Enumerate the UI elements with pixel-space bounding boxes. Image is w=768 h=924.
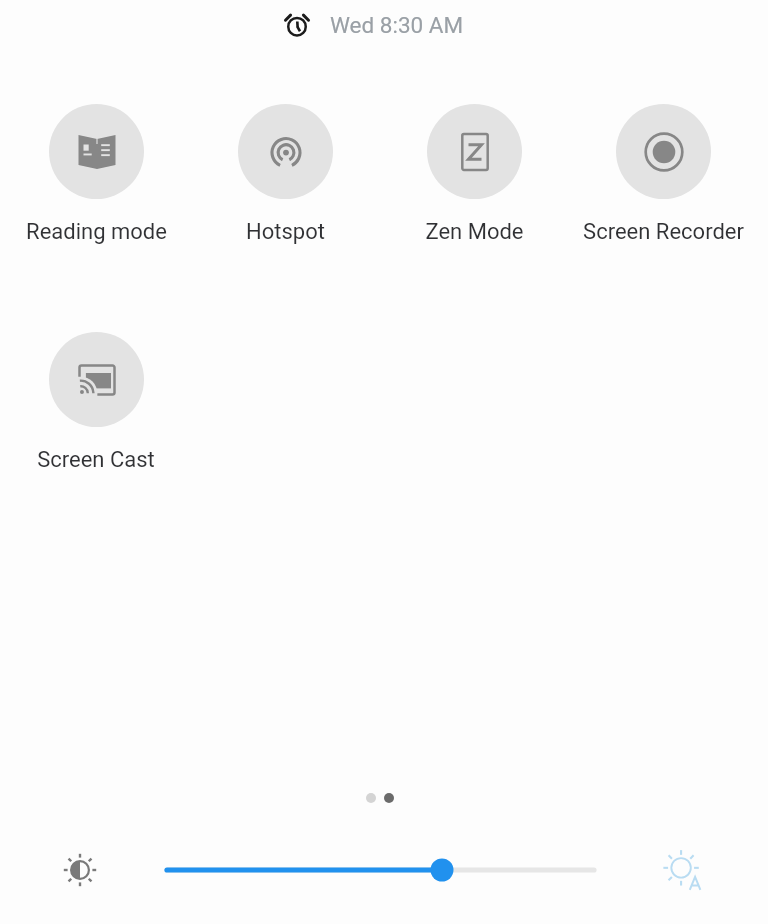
staticText: Reading mode: [26, 219, 167, 245]
button[interactable]: Brightness: [45, 842, 115, 898]
button[interactable]: Screen Cast: [6, 332, 186, 473]
button[interactable]: Zen Mode: [384, 104, 564, 245]
button[interactable]: Auto brightness: [648, 842, 718, 898]
other: Alarm: [282, 10, 312, 40]
button[interactable]: Screen Recorder: [573, 104, 753, 245]
staticText: Hotspot: [246, 219, 325, 245]
staticText: Wed 8:30 AM: [330, 12, 464, 38]
staticText: Zen Mode: [425, 219, 524, 245]
staticText: Screen Cast: [37, 447, 155, 473]
staticText: Screen Recorder: [583, 219, 744, 245]
button[interactable]: [150, 842, 610, 898]
button[interactable]: Hotspot: [195, 104, 375, 245]
button[interactable]: Reading mode: [6, 104, 186, 245]
